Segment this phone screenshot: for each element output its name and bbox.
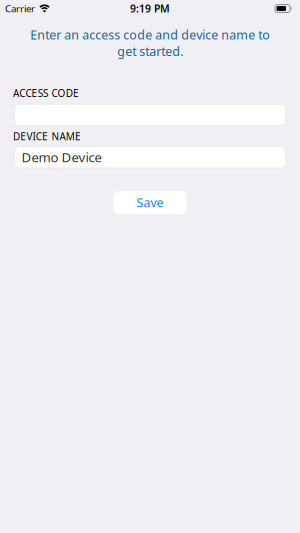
button[interactable]: Access code <box>14 104 285 126</box>
staticText: Carrier <box>5 2 35 15</box>
staticText: Save <box>136 194 163 211</box>
staticText: ACCESS CODE <box>13 86 79 100</box>
button[interactable]: Device name <box>14 146 285 168</box>
staticText: DEVICE NAME <box>13 130 81 143</box>
staticText: 9:19 PM <box>130 2 170 15</box>
staticText: Enter an access code and device name to … <box>30 26 270 59</box>
staticText: Demo Device <box>21 148 101 166</box>
button[interactable]: Save <box>113 191 186 214</box>
textField[interactable]: Demo Device <box>21 148 285 166</box>
